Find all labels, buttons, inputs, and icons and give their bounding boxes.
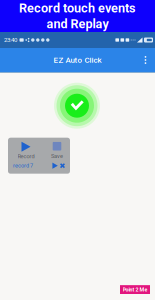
staticText: EZ Auto Click — [53, 55, 101, 65]
staticText: Record touch events — [19, 1, 136, 15]
button[interactable]: Record — [8, 141, 44, 161]
button[interactable]: Save — [44, 141, 70, 161]
button[interactable]: Delete recording — [60, 163, 65, 168]
staticText: Save — [51, 153, 63, 159]
staticText: 23:40 — [4, 36, 17, 44]
button[interactable]: Play recording — [52, 163, 58, 169]
staticText: record 7 — [13, 162, 33, 169]
staticText: and Replay — [46, 16, 108, 31]
button[interactable]: More options — [136, 48, 155, 72]
staticText: Point 2 Me — [122, 286, 147, 293]
staticText: Record — [17, 153, 34, 160]
